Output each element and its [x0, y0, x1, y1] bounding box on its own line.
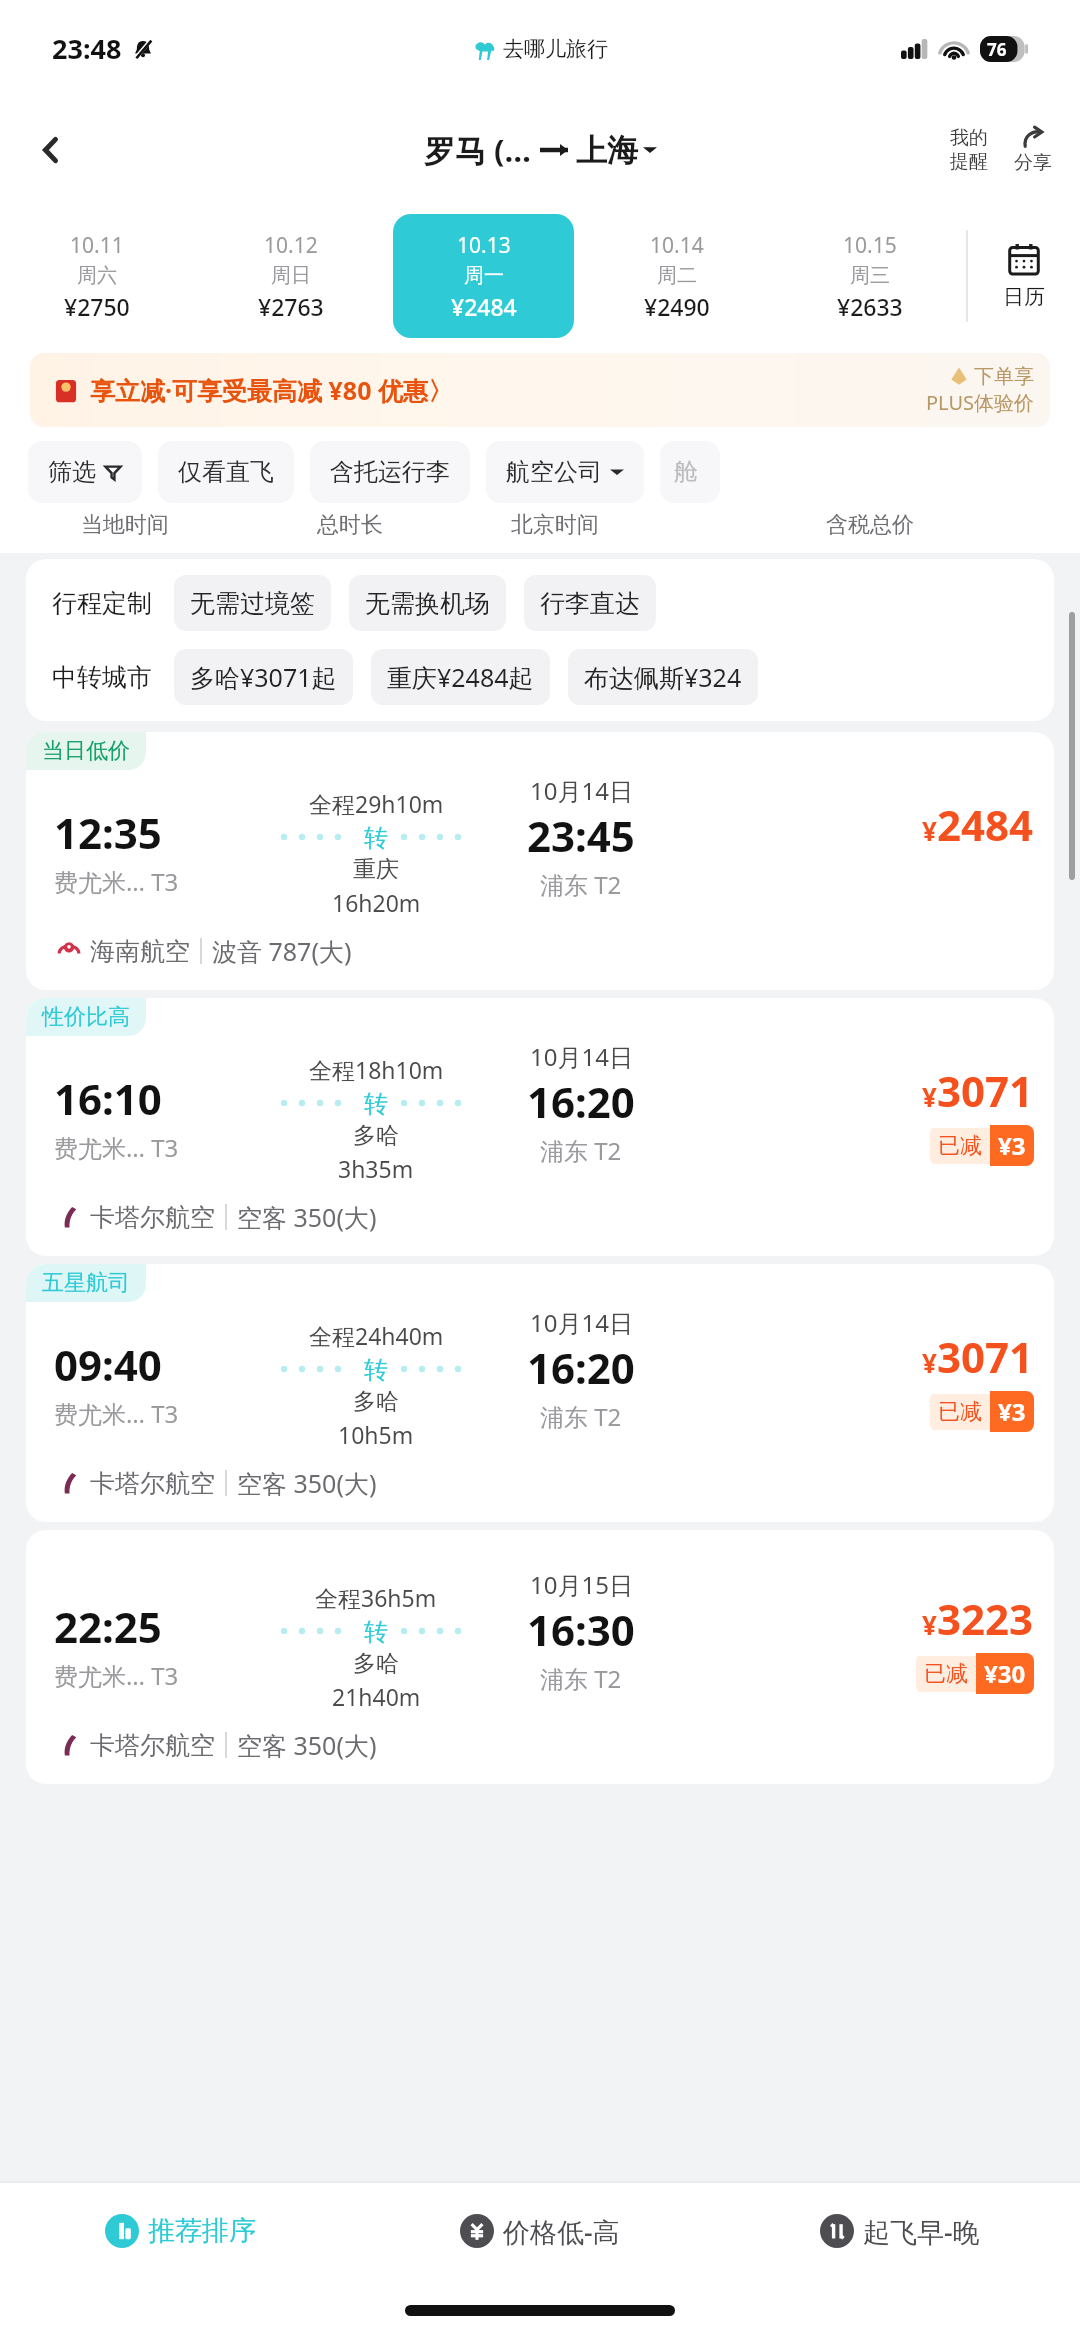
staticText: 10月14日: [530, 774, 633, 807]
button[interactable]: 我的: [944, 126, 994, 174]
button[interactable]: 多哈¥3071起: [174, 649, 353, 705]
staticText: 费尤米… T3: [54, 865, 179, 898]
staticText: ¥2490: [644, 291, 710, 322]
staticText: 五星航司: [42, 1269, 130, 1297]
staticText: 当地时间: [81, 511, 169, 539]
button[interactable]: 航空公司: [486, 441, 644, 503]
staticText: 2484: [937, 796, 1034, 853]
staticText: 23:45: [527, 807, 635, 864]
staticText: 浦东 T2: [540, 1662, 622, 1695]
staticText: 无需换机场: [365, 588, 490, 619]
staticText: 12:35: [54, 804, 162, 861]
staticText: 仅看直飞: [178, 457, 274, 487]
staticText: 含托运行李: [330, 457, 450, 487]
staticText: 已减: [938, 1132, 982, 1160]
staticText: ¥2763: [258, 291, 324, 322]
staticText: 费尤米… T3: [54, 1659, 179, 1692]
staticText: 周三: [850, 263, 890, 288]
staticText: 10h5m: [338, 1419, 414, 1450]
staticText: 76: [987, 38, 1007, 61]
button[interactable]: 日历: [968, 242, 1080, 310]
button[interactable]: 10.15: [779, 221, 960, 331]
button[interactable]: 当日低价: [26, 732, 1054, 990]
button[interactable]: Share: [1010, 125, 1056, 175]
button[interactable]: 行李直达: [524, 575, 656, 631]
button[interactable]: 10.14: [586, 221, 767, 331]
staticText: 全程29h10m: [309, 788, 444, 819]
staticText: 10.13: [457, 231, 511, 260]
staticText: 重庆: [353, 855, 399, 884]
staticText: 周六: [77, 263, 117, 288]
button[interactable]: 起飞早-晚: [720, 2183, 1080, 2279]
staticText: 10.14: [650, 231, 704, 260]
staticText: 16:20: [527, 1339, 635, 1396]
staticText: 提醒: [950, 150, 988, 174]
staticText: 多哈: [353, 1387, 399, 1416]
staticText: 含税总价: [826, 511, 914, 539]
staticText: 推荐排序: [148, 2214, 256, 2248]
staticText: 空客 350(大): [237, 1200, 377, 1234]
staticText: 布达佩斯¥324: [584, 660, 742, 694]
button[interactable]: 推荐排序: [0, 2183, 360, 2279]
staticText: 多哈¥3071起: [190, 660, 337, 694]
staticText: 转: [364, 1089, 388, 1117]
staticText: 全程36h5m: [315, 1582, 437, 1613]
staticText: 全程24h40m: [309, 1320, 444, 1351]
button[interactable]: 无需过境签: [174, 575, 331, 631]
staticText: ¥3: [998, 1395, 1026, 1428]
staticText: 上海: [576, 131, 638, 170]
button[interactable]: 布达佩斯¥324: [568, 649, 758, 705]
button[interactable]: 筛选: [28, 441, 142, 503]
staticText: 行程定制: [52, 588, 152, 619]
button[interactable]: 重庆¥2484起: [371, 649, 550, 705]
staticText: ¥: [922, 1607, 937, 1642]
staticText: 无需过境签: [190, 588, 315, 619]
staticText: 浦东 T2: [540, 1134, 622, 1167]
staticText: ¥: [922, 1079, 937, 1114]
staticText: 全程18h10m: [309, 1054, 444, 1085]
staticText: ¥2484: [451, 291, 517, 322]
staticText: 分享: [1014, 151, 1052, 175]
staticText: 周一: [464, 263, 504, 288]
staticText: 21h40m: [332, 1681, 421, 1712]
button[interactable]: 价格低-高: [360, 2183, 720, 2279]
staticText: 下单享: [974, 364, 1034, 389]
staticText: 3071: [937, 1062, 1034, 1119]
staticText: 起飞早-晚: [863, 2213, 980, 2250]
staticText: 转: [364, 1355, 388, 1383]
staticText: 北京时间: [511, 511, 599, 539]
staticText: 16:10: [54, 1070, 162, 1127]
button[interactable]: 22:25: [26, 1530, 1054, 1784]
button[interactable]: 10.13: [393, 214, 574, 338]
staticText: 我的: [950, 126, 988, 150]
staticText: ¥: [922, 813, 937, 848]
button[interactable]: 10.12: [200, 221, 381, 331]
staticText: 10.12: [264, 231, 318, 260]
button[interactable]: 舱: [660, 441, 720, 503]
staticText: PLUS体验价: [926, 389, 1034, 416]
staticText: 享立减·可享受最高减 ¥80 优惠〉: [90, 373, 453, 407]
staticText: 10月14日: [530, 1040, 633, 1073]
staticText: 海南航空: [90, 936, 190, 967]
button[interactable]: 五星航司: [26, 1264, 1054, 1522]
staticText: 周日: [271, 263, 311, 288]
button[interactable]: 无需换机场: [349, 575, 506, 631]
button[interactable]: 含托运行李: [310, 441, 470, 503]
button[interactable]: Back: [22, 121, 80, 179]
staticText: 卡塔尔航空: [90, 1730, 215, 1761]
staticText: 中转城市: [52, 662, 152, 693]
button[interactable]: 仅看直飞: [158, 441, 294, 503]
button[interactable]: 10.11: [6, 221, 188, 331]
staticText: 价格低-高: [503, 2213, 620, 2250]
staticText: 10月14日: [530, 1306, 633, 1339]
staticText: 费尤米… T3: [54, 1397, 179, 1430]
staticText: 浦东 T2: [540, 1400, 622, 1433]
staticText: 波音 787(大): [212, 934, 352, 968]
button[interactable]: 罗马 (…: [424, 129, 657, 171]
button[interactable]: 享立减·可享受最高减 ¥80 优惠〉: [30, 353, 1050, 427]
button[interactable]: 性价比高: [26, 998, 1054, 1256]
staticText: 卡塔尔航空: [90, 1468, 215, 1499]
staticText: 10.15: [843, 231, 897, 260]
staticText: 性价比高: [42, 1003, 130, 1031]
staticText: 3223: [937, 1590, 1034, 1647]
